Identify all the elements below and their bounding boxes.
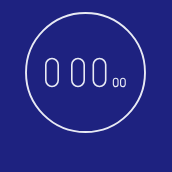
button[interactable]: Stopwatch, zero minutes zero seconds: [0, 0, 172, 172]
